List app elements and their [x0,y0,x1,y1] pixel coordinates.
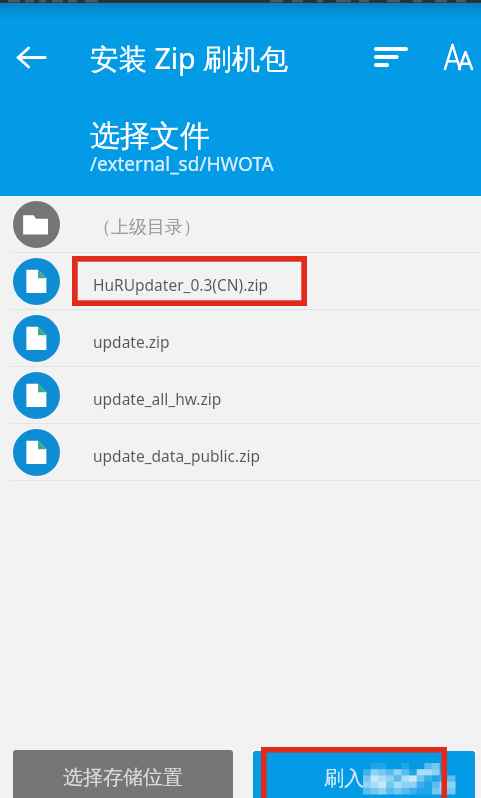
button[interactable]: update.zip [0,310,481,367]
staticText: 刷入 [324,766,364,791]
staticText: update.zip [93,331,170,352]
button[interactable]: Sort [368,34,413,79]
button[interactable]: Text size [441,34,481,79]
staticText: 安装 Zip 刷机包 [90,39,289,78]
button[interactable]: （上级目录） [0,196,481,253]
staticText: HuRUpdater_0.3(CN).zip [93,274,269,295]
button[interactable]: 刷入 [253,751,475,798]
button[interactable]: 选择存储位置 [13,750,233,798]
staticText: （上级目录） [93,216,201,239]
button[interactable]: update_all_hw.zip [0,367,481,424]
button[interactable]: Back [9,35,54,80]
staticText: /external_sd/HWOTA [90,151,274,177]
staticText: 选择文件 [90,117,210,155]
button[interactable]: update_data_public.zip [0,424,481,481]
staticText: update_all_hw.zip [93,388,222,409]
button[interactable]: HuRUpdater_0.3(CN).zip [0,253,481,310]
staticText: 选择存储位置 [63,765,183,790]
staticText: update_data_public.zip [93,445,261,466]
